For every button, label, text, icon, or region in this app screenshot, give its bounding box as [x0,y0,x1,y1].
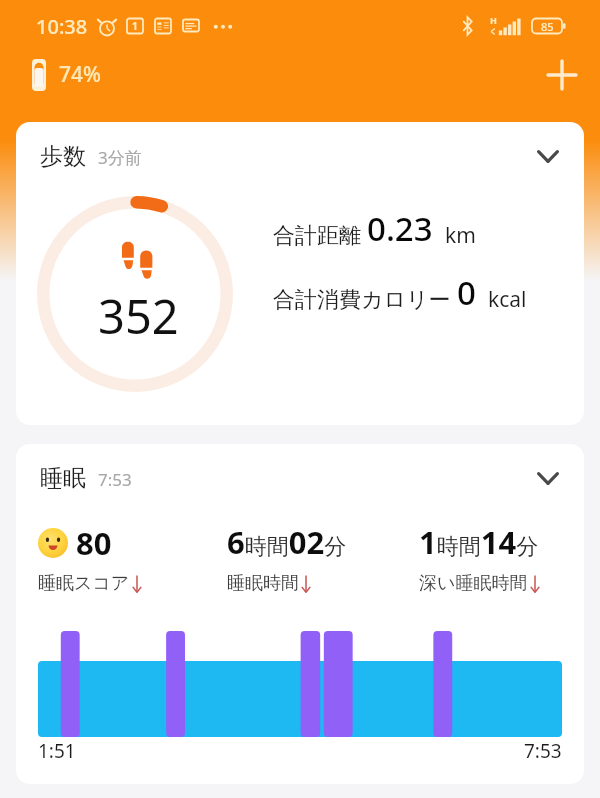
staticText: 80 [76,522,112,564]
button[interactable]: 歩数 [16,122,584,425]
staticText: 1:51 [38,738,76,764]
staticText: 7:53 [98,468,132,491]
staticText: 1時間14分 [419,521,539,563]
staticText: 1 [132,19,138,33]
staticText: 7:53 [524,738,562,764]
staticText: 3分前 [98,146,142,169]
staticText: 睡眠 [40,464,86,493]
staticText: kcal [488,285,527,314]
staticText: 85 [541,19,554,34]
staticText: 合計消費カロリー [273,286,451,314]
staticText: 睡眠時間 [227,572,299,595]
staticText: H [490,14,497,26]
staticText: 352 [98,284,179,348]
staticText: 0.23 [367,206,433,251]
staticText: 74% [59,60,101,89]
button[interactable]: Collapse [531,461,565,495]
staticText: 歩数 [40,142,86,171]
staticText: 0 [457,270,476,315]
staticText: 10:38 [36,13,88,40]
button[interactable]: Collapse [531,139,565,173]
staticText: 睡眠スコア [38,572,130,595]
staticText: km [445,221,476,250]
staticText: 6時間02分 [227,521,347,563]
button[interactable]: Add [540,53,584,97]
button[interactable]: 睡眠 [16,444,584,784]
staticText: 深い睡眠時間 [419,572,528,595]
staticText: 合計距離 [273,222,361,250]
